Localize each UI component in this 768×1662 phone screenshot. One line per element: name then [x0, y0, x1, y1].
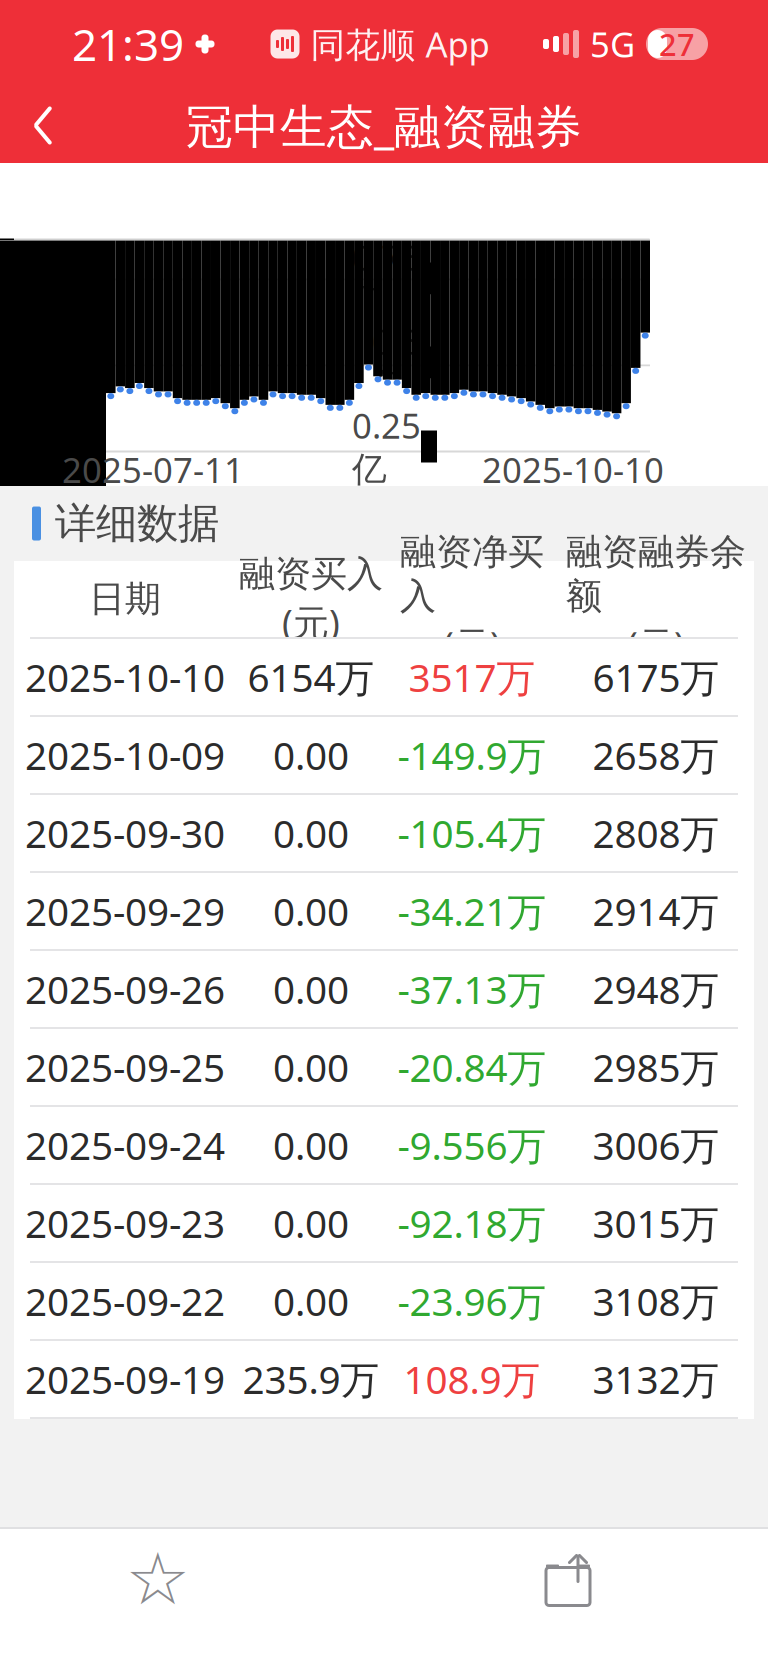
button[interactable]: 收藏 — [98, 1529, 218, 1629]
staticText: 27 — [659, 24, 695, 64]
staticText: 21:39 — [72, 15, 184, 73]
staticText: 0.00 — [273, 1041, 349, 1093]
staticText: 0.00 — [273, 963, 349, 1015]
button[interactable]: 2025-09-19 — [14, 1341, 754, 1417]
staticText: 融资买入 — [239, 552, 383, 596]
staticText: 235.9万 — [242, 1353, 379, 1405]
staticText: 0.00 — [273, 1275, 349, 1327]
staticText: 冠中生态_融资融券 — [186, 94, 582, 156]
button[interactable]: 2025-09-29 — [14, 873, 754, 949]
staticText: 3108万 — [592, 1275, 719, 1327]
staticText: 融资净买入 — [400, 530, 544, 618]
staticText: 2025-09-26 — [25, 963, 225, 1015]
staticText: 2025-09-22 — [25, 1275, 225, 1327]
staticText: -9.556万 — [397, 1119, 546, 1171]
button[interactable]: 2025-09-26 — [14, 951, 754, 1027]
button[interactable]: 2025-09-22 — [14, 1263, 754, 1339]
staticText: 0.25亿 — [352, 402, 421, 491]
staticText: 5G — [590, 21, 635, 67]
staticText: 详细数据 — [55, 498, 219, 549]
button[interactable]: 分享 — [508, 1529, 628, 1629]
button[interactable]: 2025-09-30 — [14, 795, 754, 871]
staticText: -105.4万 — [397, 807, 546, 859]
staticText: 0.75亿 — [352, 234, 421, 323]
staticText: ☆ — [125, 1538, 190, 1620]
staticText: 6154万 — [247, 651, 374, 703]
staticText: -20.84万 — [397, 1041, 546, 1093]
staticText: 2025-10-10 — [25, 651, 225, 703]
staticText: 0.00 — [273, 807, 349, 859]
staticText: 2025-09-29 — [25, 885, 225, 937]
staticText: 日期 — [89, 577, 161, 621]
button[interactable]: 2025-10-09 — [14, 717, 754, 793]
staticText: -149.9万 — [397, 729, 546, 781]
button[interactable]: 2025-09-23 — [14, 1185, 754, 1261]
staticText: 2025-09-24 — [25, 1119, 225, 1171]
staticText: 2025-07-11 — [62, 446, 244, 492]
button[interactable]: 2025-10-10 — [14, 639, 754, 715]
staticText: 6175万 — [592, 651, 719, 703]
staticText: -23.96万 — [397, 1275, 546, 1327]
staticText: 2985万 — [592, 1041, 719, 1093]
staticText: 3006万 — [592, 1119, 719, 1171]
staticText: 2658万 — [592, 729, 719, 781]
staticText: -37.13万 — [397, 963, 546, 1015]
staticText: 2025-10-09 — [25, 729, 225, 781]
staticText: (元) — [627, 620, 685, 668]
button[interactable]: 返回 — [0, 88, 86, 163]
staticText: 2025-09-25 — [25, 1041, 225, 1093]
staticText: 2914万 — [592, 885, 719, 937]
staticText: 同花顺 App — [310, 21, 489, 67]
staticText: 2808万 — [592, 807, 719, 859]
staticText: 108.9万 — [403, 1353, 540, 1405]
staticText: 0.5亿 — [372, 318, 421, 407]
staticText: 融资融券余额 — [566, 530, 746, 618]
staticText: 0.00 — [273, 885, 349, 937]
button[interactable]: 2025-09-25 — [14, 1029, 754, 1105]
staticText: 0.00 — [273, 1119, 349, 1171]
staticText: 2025-09-23 — [25, 1197, 225, 1249]
staticText: 2025-10-10 — [482, 446, 664, 492]
staticText: -34.21万 — [397, 885, 546, 937]
staticText: -92.18万 — [397, 1197, 546, 1249]
button[interactable]: 2025-09-24 — [14, 1107, 754, 1183]
staticText: 3132万 — [592, 1353, 719, 1405]
staticText: 0.00 — [273, 1197, 349, 1249]
staticText: 0.00 — [273, 729, 349, 781]
staticText: (元) — [443, 620, 501, 668]
staticText: 3015万 — [592, 1197, 719, 1249]
staticText: 2948万 — [592, 963, 719, 1015]
staticText: 3517万 — [408, 651, 535, 703]
staticText: (元) — [282, 598, 340, 646]
staticText: 2025-09-19 — [25, 1353, 225, 1405]
staticText: 2025-09-30 — [25, 807, 225, 859]
